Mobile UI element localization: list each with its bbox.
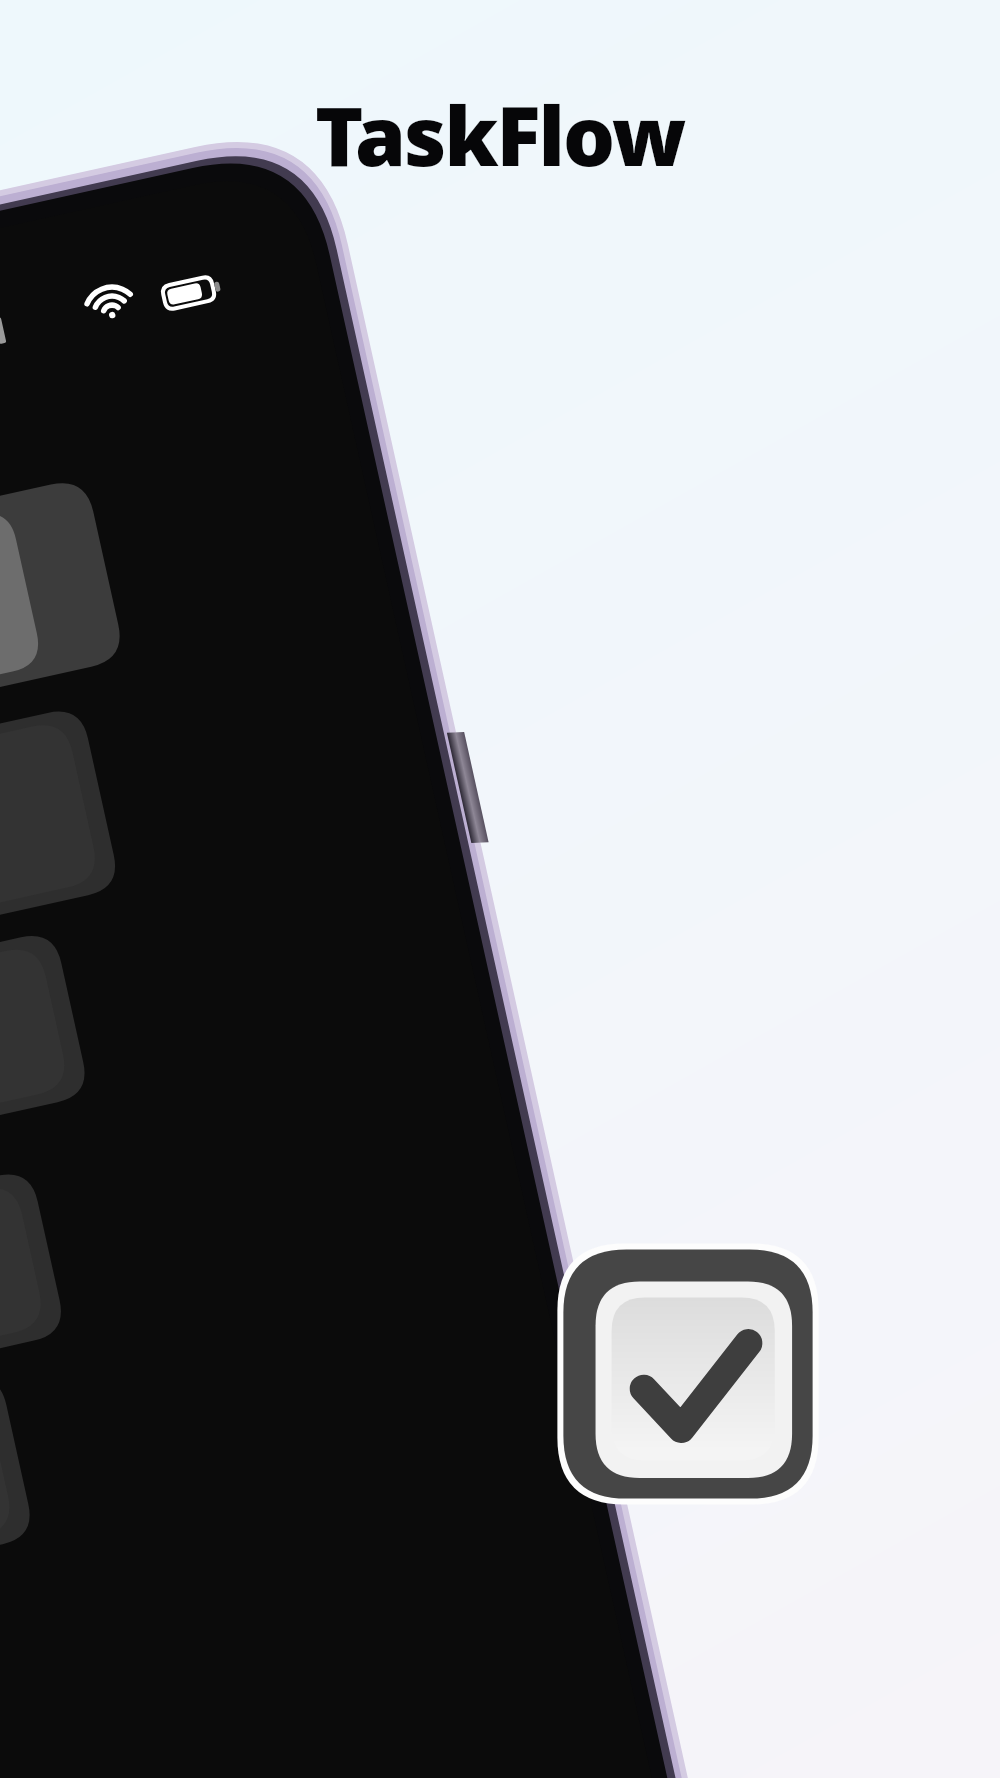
button[interactable]: Completed task xyxy=(554,1240,822,1508)
staticText: TaskFlow xyxy=(315,78,685,190)
button[interactable]: TaskFlow xyxy=(315,0,685,190)
